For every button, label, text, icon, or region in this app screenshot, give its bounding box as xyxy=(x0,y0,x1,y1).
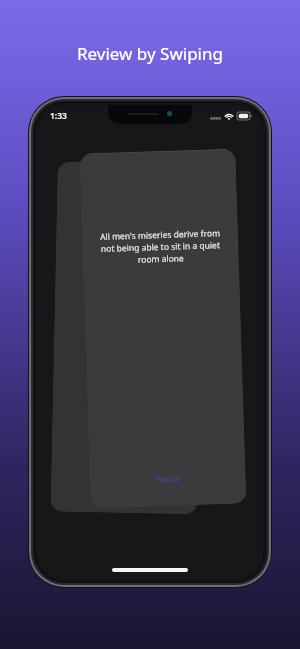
staticText: Review by Swiping xyxy=(77,42,223,65)
button[interactable]: All men's miseries derive from not being… xyxy=(79,149,247,508)
staticText: 1:33 xyxy=(50,110,67,122)
staticText: All men's miseries derive from not being… xyxy=(93,227,228,267)
staticText: Pascal xyxy=(90,470,246,486)
button[interactable]: You xyxy=(50,161,205,514)
